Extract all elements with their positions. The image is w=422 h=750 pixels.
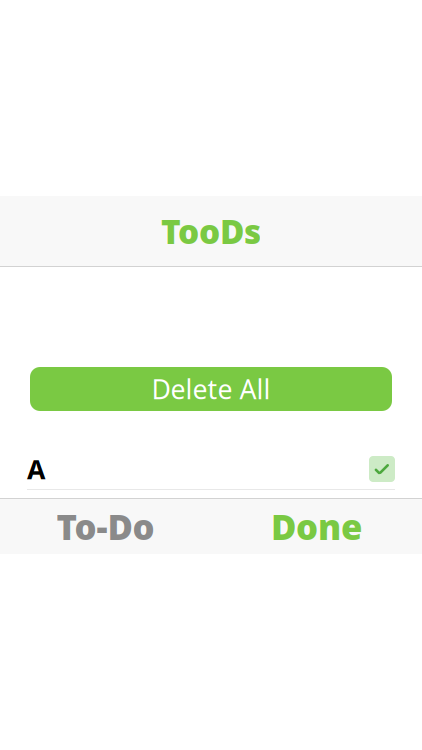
staticText: Done xyxy=(271,503,362,549)
button[interactable]: To-Do xyxy=(0,499,211,554)
button[interactable]: Delete All xyxy=(30,367,392,411)
staticText: TooDs xyxy=(161,209,261,253)
button[interactable]: Done xyxy=(211,499,422,554)
staticText: To-Do xyxy=(56,503,154,549)
staticText: Delete All xyxy=(151,371,270,407)
button[interactable]: A xyxy=(27,449,395,490)
staticText: A xyxy=(27,451,45,487)
